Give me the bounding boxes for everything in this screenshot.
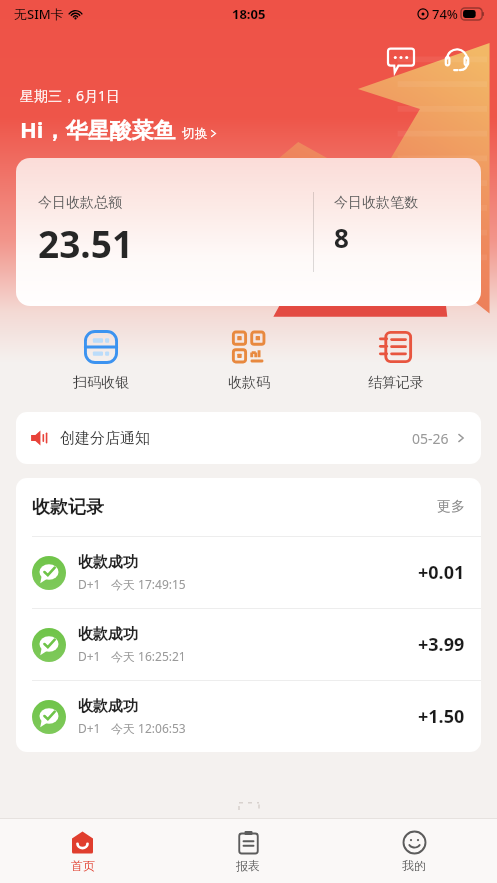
staticText: 今日收款总额 xyxy=(38,194,122,212)
staticText: 今天 17:49:15 xyxy=(111,576,186,592)
button[interactable]: 我的 xyxy=(331,819,497,883)
staticText: 收款码 xyxy=(228,374,270,392)
staticText: 我的 xyxy=(402,858,426,873)
staticText: 创建分店通知 xyxy=(60,429,150,448)
staticText: 星期三，6月1日 xyxy=(20,86,121,105)
staticText: 结算记录 xyxy=(368,374,424,392)
button[interactable]: 客服 xyxy=(435,38,479,82)
staticText: 8 xyxy=(334,220,349,255)
staticText: 更多 xyxy=(437,498,465,516)
staticText: D+1 xyxy=(78,720,101,736)
staticText: 无SIM卡 xyxy=(14,5,64,23)
staticText: +1.50 xyxy=(418,704,465,729)
staticText: 今日收款笔数 xyxy=(334,194,418,212)
staticText: D+1 xyxy=(78,576,101,592)
button[interactable]: 扫码收银 xyxy=(46,324,156,398)
button[interactable]: 收款成功 xyxy=(16,681,481,752)
staticText: Hi，华星酸菜鱼 xyxy=(20,114,176,144)
staticText: 报表 xyxy=(236,858,260,873)
staticText: 今天 16:25:21 xyxy=(111,648,186,664)
staticText: +3.99 xyxy=(418,632,465,657)
staticText: 切换 xyxy=(182,125,208,141)
button[interactable]: 结算记录 xyxy=(341,324,451,398)
staticText: 扫码收银 xyxy=(73,374,129,392)
button[interactable]: 收款码 xyxy=(194,324,304,398)
button[interactable]: 收款成功 xyxy=(16,537,481,608)
staticText: 23.51 xyxy=(38,218,134,268)
button[interactable]: 切换 xyxy=(182,125,219,141)
staticText: 收款成功 xyxy=(78,553,138,572)
staticText: 收款记录 xyxy=(32,496,104,519)
staticText: 74% xyxy=(432,5,458,23)
button[interactable]: 收款成功 xyxy=(16,609,481,680)
staticText: 05-26 xyxy=(412,429,449,448)
button[interactable]: 消息 xyxy=(379,38,423,82)
button[interactable]: 今日收款总额 xyxy=(16,158,481,306)
staticText: D+1 xyxy=(78,648,101,664)
staticText: 收款成功 xyxy=(78,697,138,716)
staticText: 今天 12:06:53 xyxy=(111,720,186,736)
button[interactable]: 创建分店通知 xyxy=(16,412,481,464)
staticText: +0.01 xyxy=(418,560,465,585)
staticText: 18:05 xyxy=(232,5,266,23)
button[interactable]: 收款记录 xyxy=(16,478,481,536)
button[interactable]: 报表 xyxy=(165,819,331,883)
button[interactable]: 首页 xyxy=(0,819,165,883)
staticText: 收款成功 xyxy=(78,625,138,644)
staticText: 首页 xyxy=(71,858,95,873)
